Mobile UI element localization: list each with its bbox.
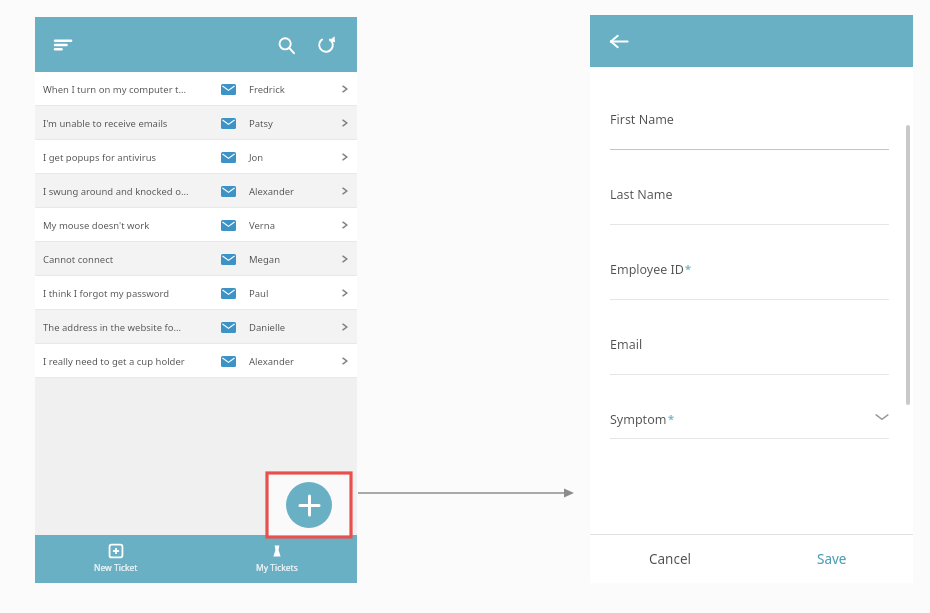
button[interactable]: My Tickets bbox=[196, 535, 357, 583]
staticText: I really need to get a cup holder bbox=[43, 355, 185, 368]
button[interactable]: I get popups for antivirus bbox=[35, 140, 357, 174]
staticText: Save bbox=[817, 550, 847, 568]
button[interactable]: I swung around and knocked o... bbox=[35, 174, 357, 208]
staticText: New Ticket bbox=[94, 562, 138, 574]
button[interactable]: I really need to get a cup holder bbox=[35, 344, 357, 378]
staticText: First Name bbox=[610, 111, 674, 128]
staticText: Cancel bbox=[649, 550, 692, 568]
button[interactable]: Add ticket bbox=[286, 482, 332, 528]
button[interactable]: When I turn on my computer t... bbox=[35, 72, 357, 106]
staticText: I think I forgot my password bbox=[43, 287, 170, 300]
button[interactable]: Save bbox=[751, 535, 913, 583]
staticText: Alexander bbox=[249, 355, 295, 368]
button[interactable]: I think I forgot my password bbox=[35, 276, 357, 310]
button[interactable]: Search bbox=[269, 28, 303, 62]
button[interactable]: I'm unable to receive emails bbox=[35, 106, 357, 140]
staticText: My mouse doesn't work bbox=[43, 219, 150, 232]
button[interactable]: Cancel bbox=[590, 535, 751, 583]
staticText: Paul bbox=[249, 287, 269, 300]
button[interactable]: Filter bbox=[45, 27, 81, 63]
staticText: Verna bbox=[249, 219, 275, 232]
button[interactable]: New Ticket bbox=[35, 535, 196, 583]
staticText: When I turn on my computer t... bbox=[43, 83, 187, 96]
staticText: Employee ID bbox=[610, 261, 684, 278]
staticText: I'm unable to receive emails bbox=[43, 117, 168, 130]
staticText: Patsy bbox=[249, 117, 273, 130]
staticText: Jon bbox=[249, 151, 264, 164]
staticText: I swung around and knocked o... bbox=[43, 185, 189, 198]
staticText: Symptom bbox=[610, 411, 667, 428]
staticText: Cannot connect bbox=[43, 253, 114, 266]
staticText: * bbox=[685, 261, 692, 276]
staticText: Megan bbox=[249, 253, 281, 266]
button[interactable]: Refresh bbox=[309, 28, 343, 62]
staticText: Last Name bbox=[610, 186, 673, 203]
staticText: My Tickets bbox=[256, 562, 298, 574]
staticText: * bbox=[668, 411, 675, 426]
staticText: Alexander bbox=[249, 185, 295, 198]
staticText: Danielle bbox=[249, 321, 286, 334]
button[interactable]: Cannot connect bbox=[35, 242, 357, 276]
staticText: I get popups for antivirus bbox=[43, 151, 157, 164]
button[interactable]: My mouse doesn't work bbox=[35, 208, 357, 242]
button[interactable]: Back bbox=[600, 23, 636, 59]
staticText: Fredrick bbox=[249, 83, 285, 96]
staticText: The address in the website fo... bbox=[43, 321, 182, 334]
button[interactable]: The address in the website fo... bbox=[35, 310, 357, 344]
staticText: Email bbox=[610, 336, 643, 353]
